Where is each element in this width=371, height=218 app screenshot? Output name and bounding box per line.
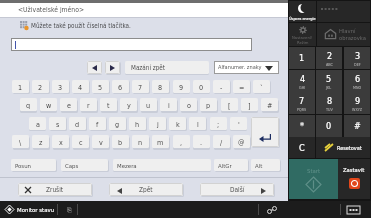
- button[interactable]: g: [109, 117, 126, 130]
- button[interactable]: f: [89, 117, 106, 130]
- button[interactable]: 4: [72, 80, 89, 93]
- button[interactable]: 8: [152, 80, 169, 93]
- button[interactable]: Alfanumer. znaky: [214, 61, 279, 74]
- button[interactable]: Monitor stavu: [2, 202, 56, 217]
- staticText: 7: [299, 96, 305, 106]
- button[interactable]: 9: [173, 80, 190, 93]
- button[interactable]: Resetovat: [316, 137, 370, 158]
- button[interactable]: m: [152, 135, 169, 148]
- button[interactable]: t: [100, 98, 117, 111]
- button[interactable]: 6: [112, 80, 129, 93]
- button[interactable]: n: [132, 135, 149, 148]
- button[interactable]: j: [149, 117, 166, 130]
- button[interactable]: 3: [52, 80, 69, 93]
- button[interactable]: a: [29, 117, 46, 130]
- button[interactable]: Posun: [11, 159, 56, 171]
- staticText: m: [157, 138, 164, 146]
- button[interactable]: 1: [12, 80, 29, 93]
- button[interactable]: 9: [344, 92, 370, 114]
- button[interactable]: 3: [344, 47, 370, 69]
- button[interactable]: p: [200, 98, 217, 111]
- button[interactable]: Move left: [87, 61, 102, 74]
- button[interactable]: 2: [316, 47, 342, 69]
- staticText: 7: [138, 83, 143, 91]
- button[interactable]: /: [213, 135, 230, 148]
- button[interactable]: 0: [316, 115, 342, 137]
- button[interactable]: 5: [92, 80, 109, 93]
- button[interactable]: .: [193, 135, 210, 148]
- button[interactable]: AltGr: [214, 159, 248, 171]
- staticText: TUV: [326, 107, 333, 111]
- button[interactable]: ': [230, 117, 247, 130]
- button[interactable]: Další: [200, 183, 274, 196]
- button[interactable]: v: [92, 135, 109, 148]
- button[interactable]: i: [160, 98, 177, 111]
- button[interactable]: b: [112, 135, 129, 148]
- button[interactable]: =: [233, 80, 250, 93]
- button[interactable]: *: [289, 115, 315, 137]
- button[interactable]: 8: [316, 92, 342, 114]
- button[interactable]: q: [20, 98, 37, 111]
- button[interactable]: 6: [344, 70, 370, 92]
- button[interactable]: 1: [289, 47, 315, 69]
- button[interactable]: \: [12, 135, 29, 148]
- button[interactable]: #: [344, 115, 370, 137]
- button[interactable]: h: [129, 117, 146, 130]
- button[interactable]: 7: [289, 92, 315, 114]
- button[interactable]: Hlavní: [317, 23, 370, 46]
- button[interactable]: 0: [193, 80, 210, 93]
- button[interactable]: r: [80, 98, 97, 111]
- button[interactable]: Start: [289, 159, 338, 199]
- button[interactable]: C: [289, 137, 315, 158]
- button[interactable]: Alt: [251, 159, 280, 171]
- staticText: x: [59, 138, 63, 146]
- button[interactable]: Nastavení/: [289, 23, 316, 46]
- button[interactable]: Keyboard: [346, 205, 361, 214]
- staticText: 6: [355, 74, 361, 84]
- staticText: [: [228, 101, 231, 109]
- button[interactable]: Mazání zpět: [125, 61, 209, 74]
- button[interactable]: z: [32, 135, 49, 148]
- staticText: -: [220, 83, 223, 91]
- button[interactable]: Mezera: [113, 159, 211, 171]
- button[interactable]: k: [169, 117, 186, 130]
- button[interactable]: Network: [265, 204, 279, 215]
- staticText: Úspora energie: [289, 16, 316, 21]
- button[interactable]: -: [213, 80, 230, 93]
- button[interactable]: ,: [173, 135, 190, 148]
- button[interactable]: l: [189, 117, 206, 130]
- button[interactable]: `: [253, 80, 270, 93]
- button[interactable]: s: [49, 117, 66, 130]
- button[interactable]: Caps: [61, 159, 108, 171]
- button[interactable]: 7: [132, 80, 149, 93]
- staticText: q: [26, 101, 31, 109]
- button[interactable]: 2: [32, 80, 49, 93]
- button[interactable]: c: [72, 135, 89, 148]
- button[interactable]: y: [120, 98, 137, 111]
- button[interactable]: ;: [210, 117, 227, 130]
- button[interactable]: Zastavit: [338, 159, 370, 199]
- button[interactable]: u: [140, 98, 157, 111]
- button[interactable]: Move right: [105, 61, 120, 74]
- staticText: Zastavit: [343, 167, 365, 174]
- button[interactable]: d: [69, 117, 86, 130]
- button[interactable]: Counter: [62, 204, 76, 215]
- button[interactable]: o: [180, 98, 197, 111]
- button[interactable]: e: [60, 98, 77, 111]
- staticText: 4: [78, 83, 83, 91]
- button[interactable]: #: [261, 98, 278, 111]
- staticText: DEF: [354, 62, 361, 66]
- button[interactable]: w: [40, 98, 57, 111]
- button[interactable]: ]: [241, 98, 258, 111]
- button[interactable]: [11, 38, 252, 51]
- button[interactable]: Zpět: [109, 183, 183, 196]
- button[interactable]: 5: [316, 70, 342, 92]
- button[interactable]: 4: [289, 70, 315, 92]
- staticText: AltGr: [218, 162, 232, 169]
- button[interactable]: Zrušit: [18, 183, 92, 196]
- button[interactable]: x: [52, 135, 69, 148]
- button[interactable]: Enter: [251, 117, 279, 147]
- button[interactable]: Úspora energie: [289, 1, 316, 22]
- button[interactable]: [: [221, 98, 238, 111]
- button[interactable]: @: [233, 135, 250, 148]
